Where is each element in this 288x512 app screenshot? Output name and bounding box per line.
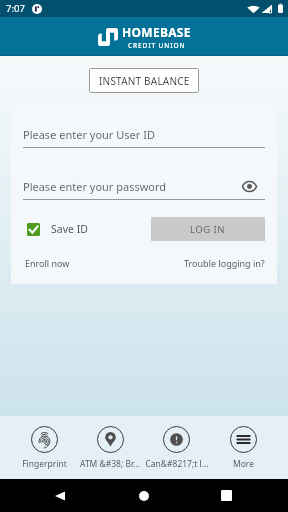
button[interactable]: Enroll now (23, 257, 70, 269)
staticText: Please enter your password (23, 179, 167, 194)
staticText: ATM &#38; Br... (80, 458, 140, 470)
staticText: CREDIT UNION (128, 41, 186, 50)
button[interactable]: Recents (221, 490, 232, 501)
staticText: Please enter your User ID (23, 127, 155, 142)
staticText: More (233, 458, 254, 470)
button[interactable]: Back (55, 491, 65, 501)
staticText: LOG IN (190, 223, 226, 236)
button[interactable]: Can&#8217;t l... (143, 416, 210, 479)
staticText: HOMEBASE (122, 24, 191, 40)
button[interactable]: Save ID (23, 222, 88, 236)
button[interactable]: More (210, 416, 277, 479)
staticText: Save ID (51, 222, 88, 236)
button[interactable]: INSTANT BALANCE (89, 68, 199, 93)
button[interactable]: Home (139, 491, 149, 501)
button[interactable]: Trouble logging in? (184, 257, 265, 269)
button[interactable]: ATM &#38; Br... (77, 416, 143, 479)
staticText: Fingerprint (22, 458, 67, 470)
staticText: Can&#8217;t l... (145, 458, 209, 470)
button[interactable]: Show password (242, 180, 257, 193)
staticText: INSTANT BALANCE (99, 74, 190, 88)
staticText: 7:07 (6, 2, 25, 15)
button[interactable]: Fingerprint (11, 416, 77, 479)
button[interactable]: LOG IN (151, 217, 265, 241)
